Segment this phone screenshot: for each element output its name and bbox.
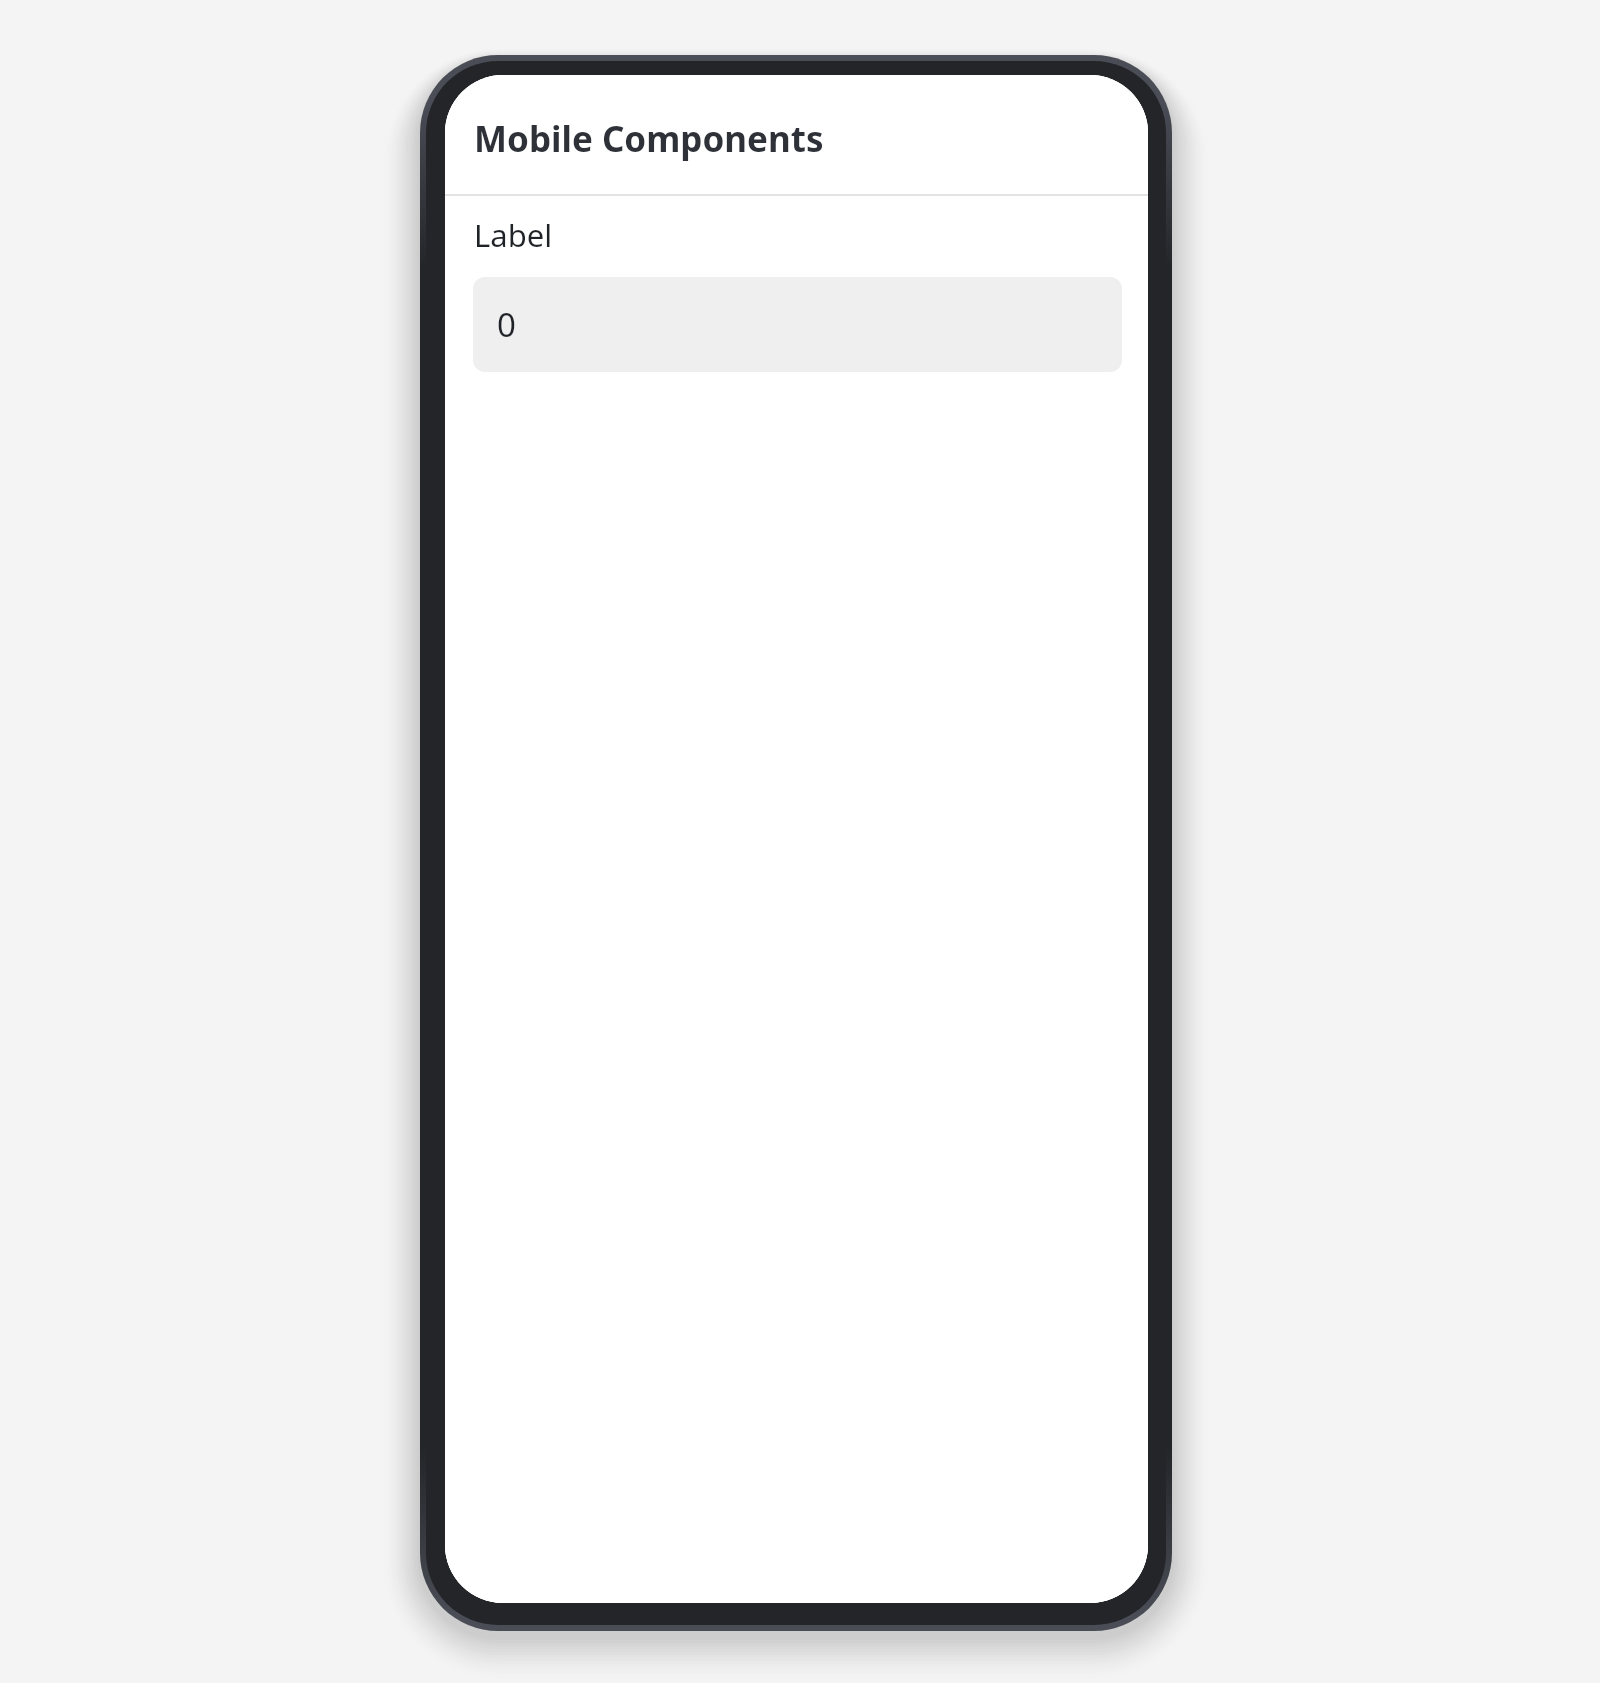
button[interactable]: Label value field: [473, 277, 1122, 372]
staticText: Mobile Components: [474, 115, 824, 163]
staticText: 0: [497, 302, 516, 347]
staticText: Label: [474, 214, 553, 256]
